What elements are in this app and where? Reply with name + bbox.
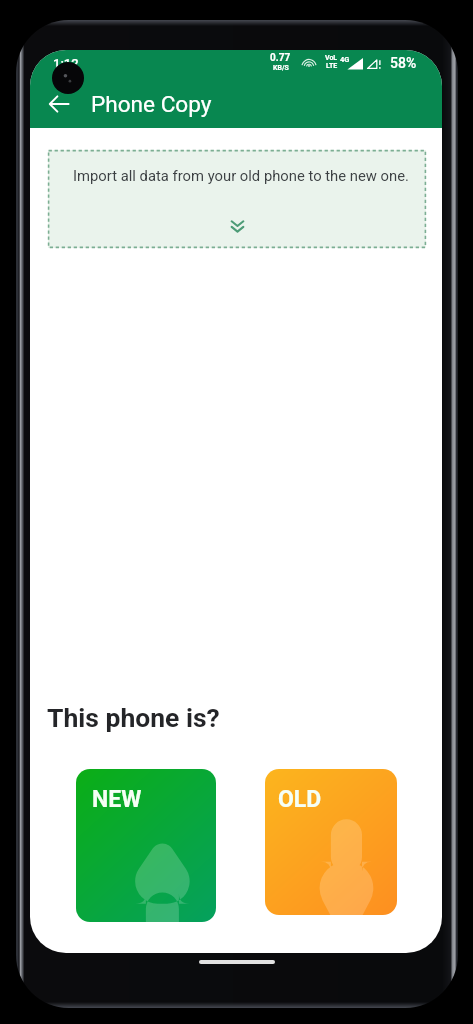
staticText: KB/S xyxy=(273,64,289,72)
staticText: LTE xyxy=(326,62,338,70)
staticText: Phone Copy xyxy=(91,91,212,117)
staticText: VoL xyxy=(325,54,338,62)
staticText: 4G xyxy=(340,55,350,64)
button[interactable]: NEW xyxy=(76,769,216,922)
button[interactable]: OLD xyxy=(265,769,397,915)
staticText: OLD xyxy=(278,786,322,813)
staticText: 0.77 xyxy=(270,52,291,64)
staticText: This phone is? xyxy=(47,702,220,733)
staticText: 58% xyxy=(390,55,417,71)
staticText: 1:12 xyxy=(53,56,79,71)
staticText: Import all data from your old phone to t… xyxy=(73,167,409,184)
button[interactable]: Back xyxy=(30,80,79,128)
staticText: NEW xyxy=(92,786,142,813)
button[interactable]: Import all data from your old phone to t… xyxy=(48,150,426,248)
